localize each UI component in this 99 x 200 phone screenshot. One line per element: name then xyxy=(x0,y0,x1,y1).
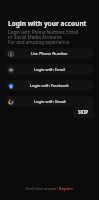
button[interactable]: Register xyxy=(59,186,74,191)
staticText: Login with Phone Number, Email or Social… xyxy=(8,29,79,45)
button[interactable]: SKIP xyxy=(73,106,94,118)
staticText: Don't have account? xyxy=(26,186,59,191)
button[interactable]: Login with Email xyxy=(5,64,94,75)
staticText: Login with Facebook xyxy=(30,83,69,88)
staticText: Use Phone Number xyxy=(31,51,68,56)
staticText: Login with Email xyxy=(34,67,65,72)
staticText: Login with your account xyxy=(8,19,87,28)
staticText: Register xyxy=(59,186,74,191)
staticText: SKIP xyxy=(78,109,89,115)
button[interactable]: Use Phone Number xyxy=(5,48,94,59)
staticText: Login with Gmail xyxy=(34,99,66,104)
button[interactable]: Login with Gmail xyxy=(5,96,94,107)
button[interactable]: Login with Facebook xyxy=(5,80,94,91)
